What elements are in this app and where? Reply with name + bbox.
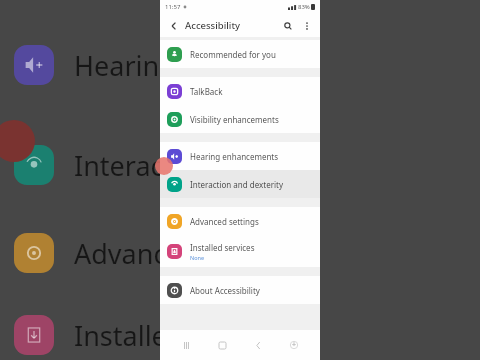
button[interactable]: Recents bbox=[176, 335, 196, 355]
staticText: Hearing bbox=[74, 47, 176, 84]
staticText: Interac bbox=[74, 147, 164, 184]
button[interactable]: Back bbox=[166, 18, 181, 33]
button[interactable]: Back bbox=[248, 335, 268, 355]
staticText: Recommended for you bbox=[190, 49, 276, 60]
button[interactable]: More options bbox=[299, 18, 314, 33]
button[interactable]: Installed services bbox=[160, 235, 320, 267]
staticText: About Accessibility bbox=[190, 285, 260, 296]
staticText: Hearing enhancements bbox=[190, 151, 279, 162]
button[interactable]: Accessibility shortcut bbox=[284, 335, 304, 355]
staticText: Interaction and dexterity bbox=[190, 179, 284, 190]
button[interactable]: Home bbox=[212, 335, 232, 355]
button[interactable]: TalkBack bbox=[160, 77, 320, 105]
staticText: Installed services bbox=[190, 242, 255, 253]
staticText: TalkBack bbox=[190, 86, 223, 97]
button[interactable]: Interaction and dexterity bbox=[160, 170, 320, 198]
staticText: Installe bbox=[74, 317, 167, 354]
staticText: 83% bbox=[298, 3, 310, 11]
button[interactable]: Recommended for you bbox=[160, 40, 320, 68]
staticText: 11:57 bbox=[165, 3, 181, 11]
staticText: Advanc bbox=[74, 235, 167, 272]
staticText: Advanced settings bbox=[190, 216, 259, 227]
button[interactable]: About Accessibility bbox=[160, 276, 320, 304]
staticText: Accessibility bbox=[185, 19, 241, 32]
staticText: None bbox=[190, 254, 205, 261]
button[interactable]: Visibility enhancements bbox=[160, 105, 320, 133]
button[interactable]: Advanced settings bbox=[160, 207, 320, 235]
button[interactable]: Hearing enhancements bbox=[160, 142, 320, 170]
button[interactable]: Search bbox=[280, 18, 295, 33]
staticText: Visibility enhancements bbox=[190, 114, 279, 125]
